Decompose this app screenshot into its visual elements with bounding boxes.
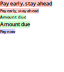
staticText: Pay early, stay ahead: [0, 0, 52, 7]
staticText: Pay early, stay ahead: [0, 8, 39, 13]
staticText: Pay now: [0, 29, 15, 34]
staticText: Amount due: [0, 21, 30, 28]
staticText: Amount due: [0, 14, 26, 20]
